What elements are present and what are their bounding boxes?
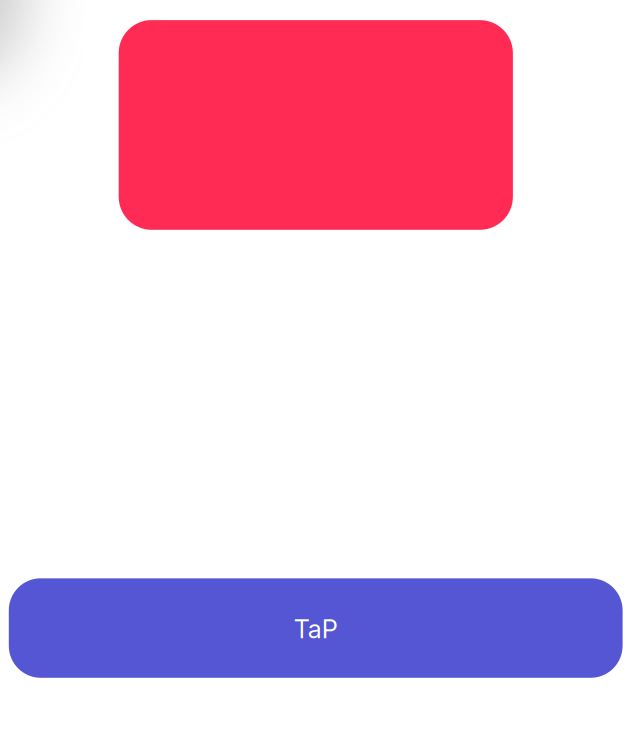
button[interactable]: TaP — [9, 578, 623, 678]
staticText: TaP — [294, 614, 338, 644]
